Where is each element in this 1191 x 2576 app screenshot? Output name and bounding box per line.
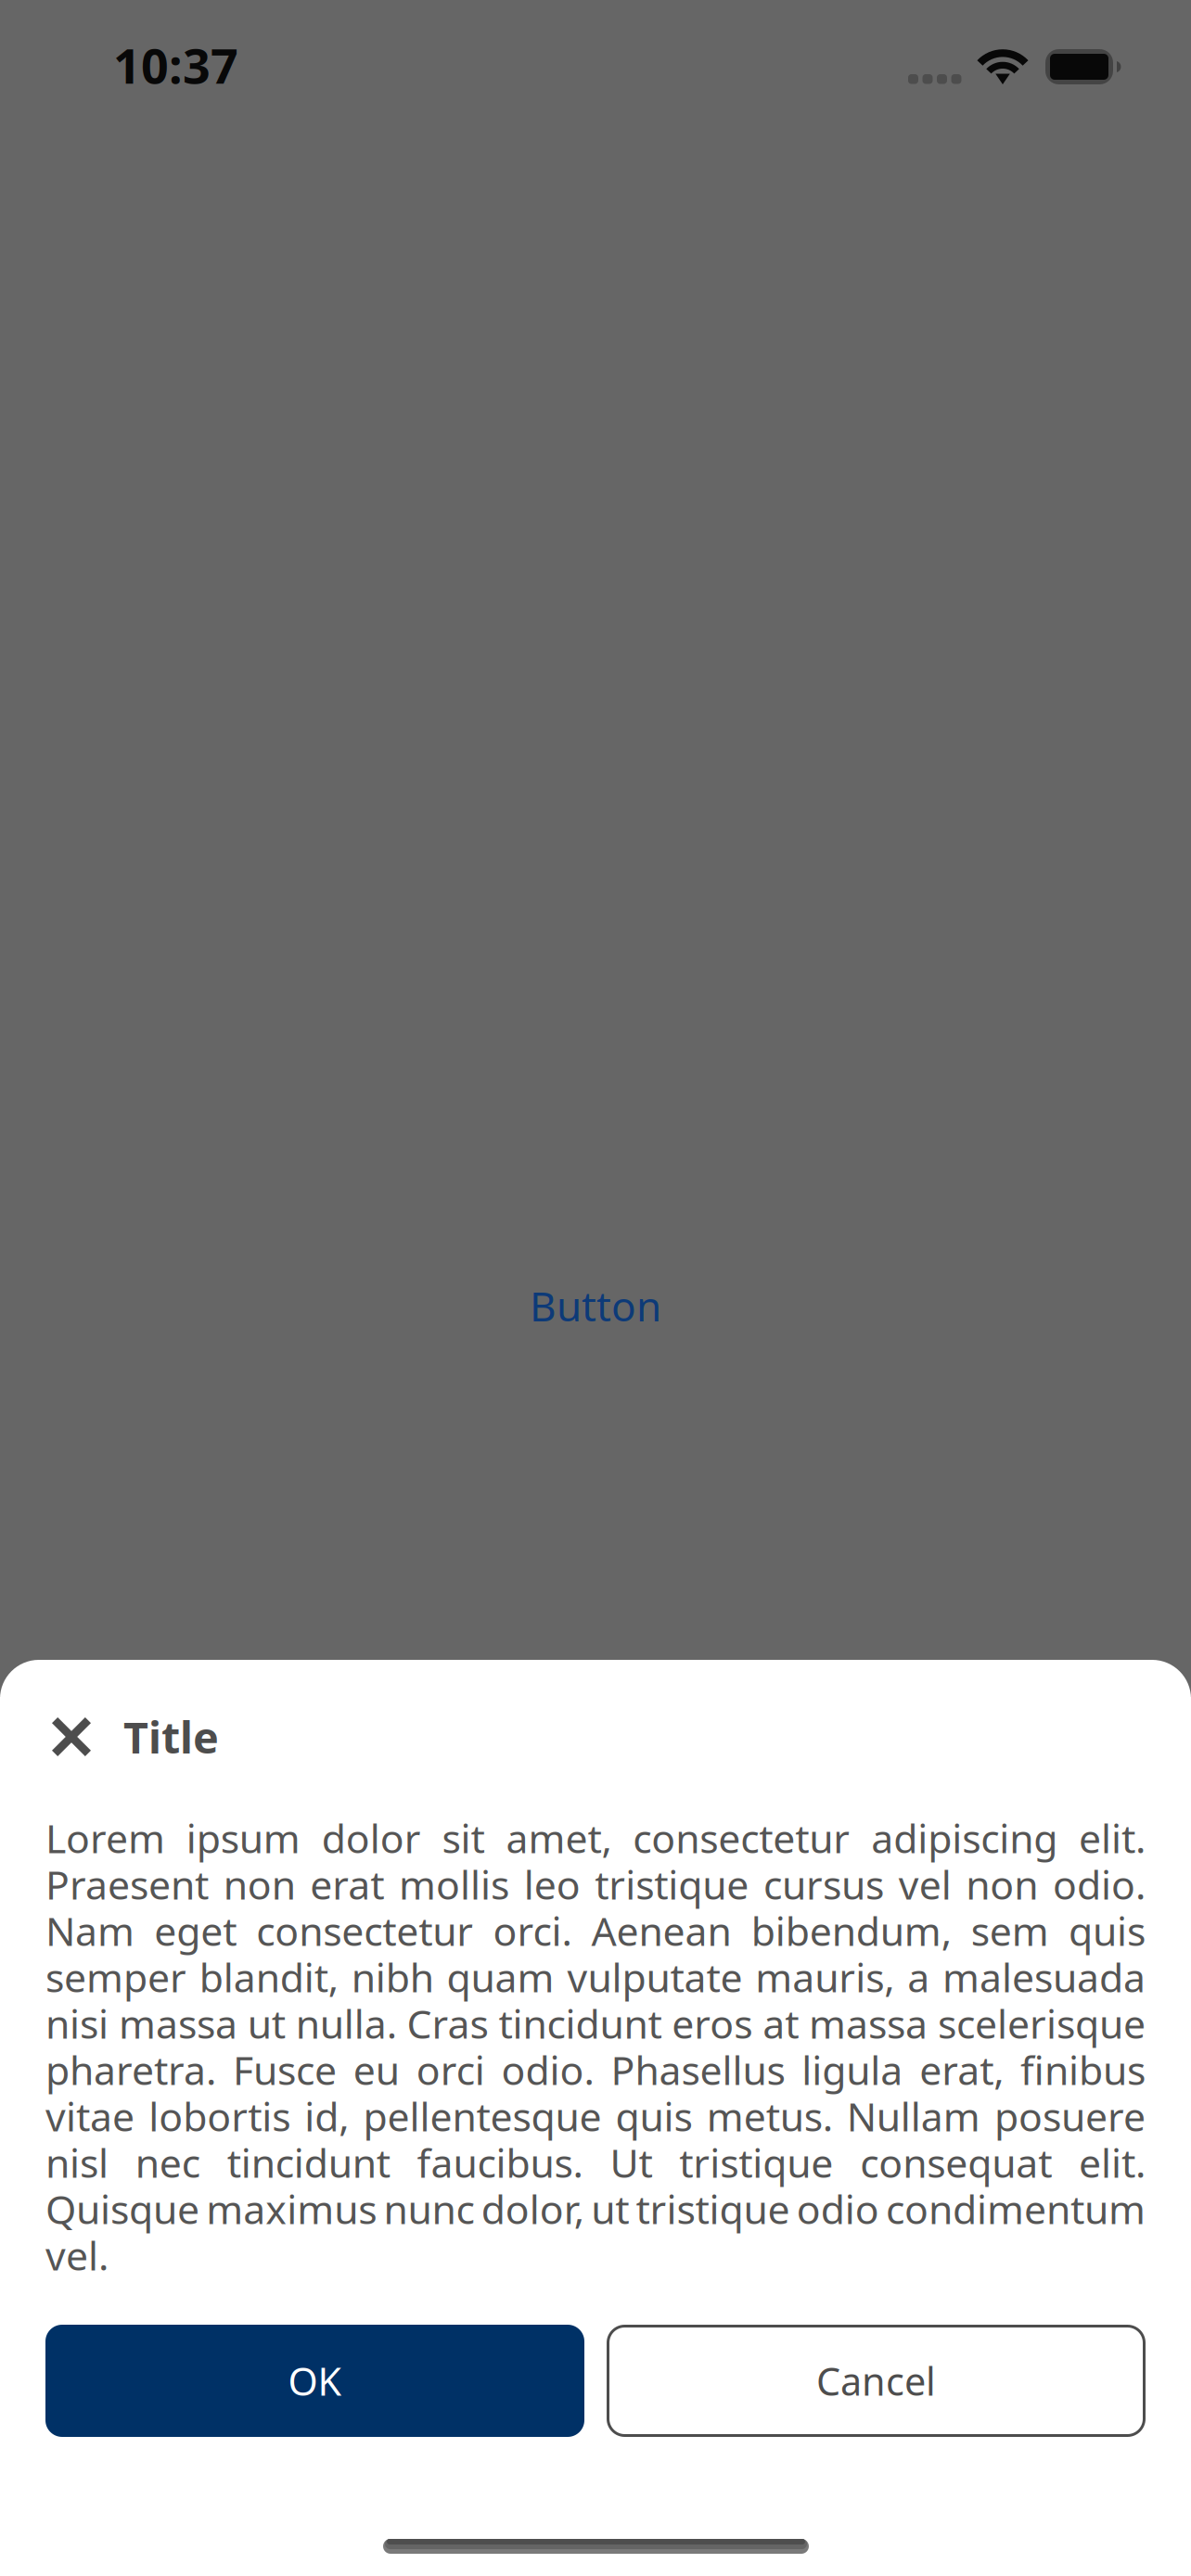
staticText: 10:37	[113, 33, 238, 97]
staticText: mauris,	[755, 1951, 894, 2003]
staticText: odio.	[1053, 1858, 1146, 1911]
staticText: malesuada	[942, 1951, 1146, 2003]
staticText: amet,	[506, 1812, 612, 1864]
staticText: at	[763, 1997, 799, 2050]
staticText: massa	[809, 1997, 928, 2050]
staticText: blandit,	[199, 1951, 338, 2003]
staticText: vel.	[45, 2229, 109, 2281]
staticText: mollis	[399, 1858, 509, 1911]
staticText: Fusce	[233, 2043, 337, 2096]
staticText: odio	[797, 2183, 879, 2235]
staticText: quis	[616, 2090, 693, 2142]
staticText: massa	[119, 1997, 237, 2050]
staticText: pellentesque	[363, 2090, 601, 2142]
staticText: Nam	[45, 1904, 134, 1957]
staticText: nibh	[351, 1951, 434, 2003]
staticText: elit.	[1079, 1812, 1146, 1864]
staticText: maximus	[206, 2183, 377, 2235]
staticText: OK	[288, 2355, 342, 2406]
button[interactable]: Cancel	[607, 2325, 1146, 2437]
staticText: metus.	[707, 2090, 833, 2142]
staticText: tristique	[679, 2136, 833, 2189]
staticText: ipsum	[186, 1812, 300, 1864]
staticText: ligula	[802, 2043, 903, 2096]
staticText: adipiscing	[871, 1812, 1058, 1864]
staticText: tristique	[636, 2183, 790, 2235]
staticText: Ut	[610, 2136, 652, 2189]
staticText: Praesent	[45, 1858, 209, 1911]
staticText: finibus	[1020, 2043, 1146, 2096]
button[interactable]: Button	[456, 1269, 735, 1343]
staticText: leo	[524, 1858, 580, 1911]
staticText: scelerisque	[938, 1997, 1146, 2050]
staticText: Cancel	[816, 2355, 936, 2406]
staticText: tristique	[595, 1858, 749, 1911]
staticText: id,	[305, 2090, 349, 2142]
staticText: bibendum,	[751, 1904, 951, 1957]
staticText: ut	[591, 2183, 629, 2235]
staticText: nisi	[45, 1997, 109, 2050]
staticText: orci.	[493, 1904, 572, 1957]
staticText: consequat	[860, 2136, 1052, 2189]
staticText: non	[966, 1858, 1038, 1911]
staticText: orci	[416, 2043, 485, 2096]
staticText: consectetur	[256, 1904, 473, 1957]
staticText: quam	[447, 1951, 554, 2003]
staticText: odio.	[501, 2043, 594, 2096]
staticText: Button	[530, 1279, 661, 1333]
button[interactable]: Close	[52, 1717, 91, 1756]
staticText: cursus	[763, 1858, 884, 1911]
staticText: Aenean	[591, 1904, 731, 1957]
staticText: Nullam	[847, 2090, 980, 2142]
staticText: lobortis	[149, 2090, 290, 2142]
staticText: consectetur	[633, 1812, 850, 1864]
staticText: non	[223, 1858, 296, 1911]
staticText: nisl	[45, 2136, 109, 2189]
staticText: eros	[672, 1997, 753, 2050]
staticText: condimentum	[886, 2183, 1146, 2235]
staticText: elit.	[1079, 2136, 1146, 2189]
staticText: ut	[247, 1997, 286, 2050]
staticText: eu	[353, 2043, 400, 2096]
staticText: posuere	[994, 2090, 1146, 2142]
staticText: vitae	[45, 2090, 134, 2142]
staticText: faucibus.	[417, 2136, 583, 2189]
staticText: Title	[123, 1708, 219, 1766]
staticText: Phasellus	[611, 2043, 785, 2096]
staticText: eget	[154, 1904, 237, 1957]
staticText: semper	[45, 1951, 186, 2003]
staticText: sem	[971, 1904, 1049, 1957]
staticText: nulla.	[296, 1997, 397, 2050]
staticText: dolor	[322, 1812, 421, 1864]
staticText: a	[907, 1951, 930, 2003]
staticText: nunc	[384, 2183, 475, 2235]
staticText: pharetra.	[45, 2043, 216, 2096]
staticText: tincidunt	[498, 1997, 662, 2050]
staticText: vulputate	[567, 1951, 742, 2003]
staticText: quis	[1069, 1904, 1146, 1957]
staticText: sit	[442, 1812, 485, 1864]
staticText: Cras	[407, 1997, 488, 2050]
staticText: tincidunt	[227, 2136, 390, 2189]
button[interactable]: OK	[45, 2325, 584, 2437]
staticText: erat,	[919, 2043, 1004, 2096]
staticText: Lorem	[45, 1812, 165, 1864]
staticText: erat	[310, 1858, 384, 1911]
staticText: vel	[899, 1858, 951, 1911]
staticText: Quisque	[45, 2183, 199, 2235]
staticText: nec	[135, 2136, 200, 2189]
staticText: dolor,	[481, 2183, 584, 2235]
